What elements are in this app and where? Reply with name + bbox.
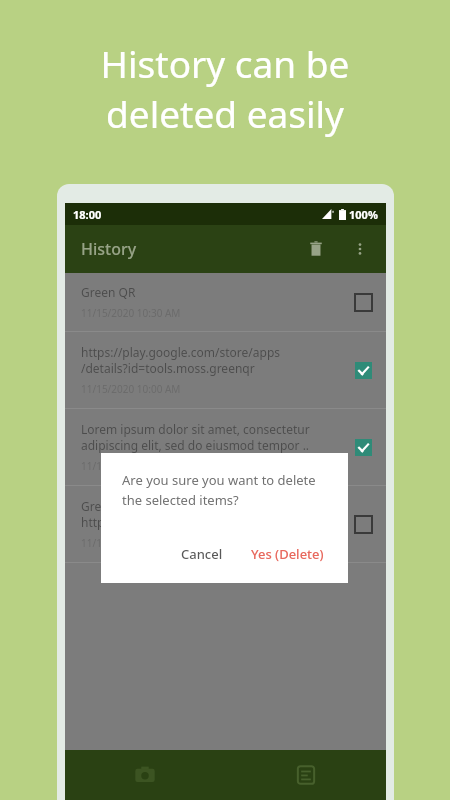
- button[interactable]: More options: [340, 229, 380, 269]
- staticText: 11/1: [81, 536, 102, 550]
- button[interactable]: Cancel: [171, 539, 233, 569]
- button[interactable]: Gre: [65, 486, 386, 562]
- button[interactable]: Scan: [65, 750, 225, 800]
- staticText: Are you sure you want to delete the sele…: [122, 471, 330, 509]
- button[interactable]: Delete: [296, 229, 336, 269]
- staticText: https://play.google.com/store/apps: [81, 344, 281, 360]
- staticText: 18:00: [73, 207, 102, 222]
- staticText: Gre: [81, 498, 102, 514]
- staticText: 11/15/2020 10:00 AM: [81, 382, 181, 396]
- staticText: adipiscing elit, sed do eiusmod tempor .…: [81, 437, 310, 453]
- staticText: /details?id=tools.moss.greenqr: [81, 360, 255, 376]
- staticText: 100%: [349, 207, 378, 222]
- staticText: Yes (Delete): [251, 545, 324, 563]
- staticText: History can be: [18, 38, 432, 88]
- staticText: History: [81, 238, 137, 260]
- button[interactable]: https://play.google.com/store/apps: [65, 332, 386, 408]
- staticText: 11/15/2020 10:30 AM: [81, 306, 181, 320]
- button[interactable]: Green QR: [65, 273, 386, 331]
- button[interactable]: History: [225, 750, 386, 800]
- staticText: Green QR: [81, 284, 136, 300]
- staticText: Cancel: [181, 545, 223, 563]
- button[interactable]: Lorem ipsum dolor sit amet, consectetur: [65, 409, 386, 485]
- staticText: 11/1: [81, 459, 102, 473]
- staticText: http: [81, 514, 105, 530]
- button[interactable]: Yes (Delete): [245, 539, 330, 569]
- staticText: deleted easily: [18, 88, 432, 138]
- staticText: Lorem ipsum dolor sit amet, consectetur: [81, 421, 310, 437]
